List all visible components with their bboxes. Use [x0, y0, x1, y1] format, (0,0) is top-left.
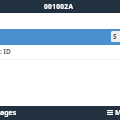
- staticText: : ID: [0, 47, 11, 56]
- staticText: ME: [115, 108, 120, 118]
- staticText: 001002A: [44, 2, 74, 11]
- staticText: ages: [0, 108, 17, 118]
- button[interactable]: 001002A: [0, 0, 120, 13]
- staticText: S: [113, 32, 117, 41]
- button[interactable]: S: [111, 31, 120, 42]
- button[interactable]: Menu: [107, 108, 120, 119]
